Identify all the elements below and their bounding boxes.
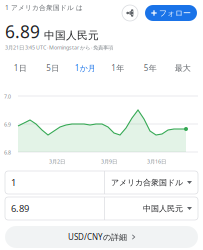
staticText: 中国人民元 (44, 29, 99, 42)
button[interactable]: 6.89 (5, 197, 198, 220)
staticText: アメリカ合衆国ドル (111, 178, 183, 187)
button[interactable]: 1日 (4, 62, 36, 74)
staticText: 5年 (144, 63, 157, 73)
staticText: 1日 (14, 63, 27, 73)
button[interactable]: フォロー (145, 5, 197, 21)
staticText: 中国人民元 (143, 204, 183, 213)
staticText: 3月9日 (101, 158, 117, 165)
button[interactable]: USD/CNYの詳細 (5, 226, 198, 248)
staticText: 6.89 (11, 202, 29, 215)
staticText: 5日 (46, 63, 59, 73)
staticText: 1 (11, 176, 16, 189)
staticText: 1年 (111, 63, 124, 73)
staticText: 3月2日 (49, 158, 65, 165)
staticText: 6.9 (4, 121, 11, 128)
staticText: 3月16日 (147, 158, 166, 165)
staticText: 6.8 (4, 149, 11, 156)
staticText: 1 アメリカ合衆国ドル は (5, 3, 83, 12)
staticText: 7.0 (4, 93, 11, 100)
staticText: USD/CNYの詳細 (68, 232, 127, 242)
staticText: フォロー (159, 8, 191, 18)
button[interactable]: 5年 (134, 62, 166, 74)
button[interactable]: 1 (5, 171, 198, 194)
button[interactable]: 5日 (36, 62, 69, 74)
staticText: 1か月 (75, 63, 96, 73)
staticText: 6.89 (5, 20, 40, 43)
button[interactable]: 最大 (166, 62, 199, 74)
button[interactable]: 1か月 (69, 62, 101, 74)
button[interactable]: 1年 (101, 62, 134, 74)
staticText: 最大 (175, 63, 191, 73)
staticText: 3月21日 3:45 UTC · Morningstar から · 免責事項 (5, 44, 113, 51)
button[interactable]: 共有 (121, 4, 139, 22)
